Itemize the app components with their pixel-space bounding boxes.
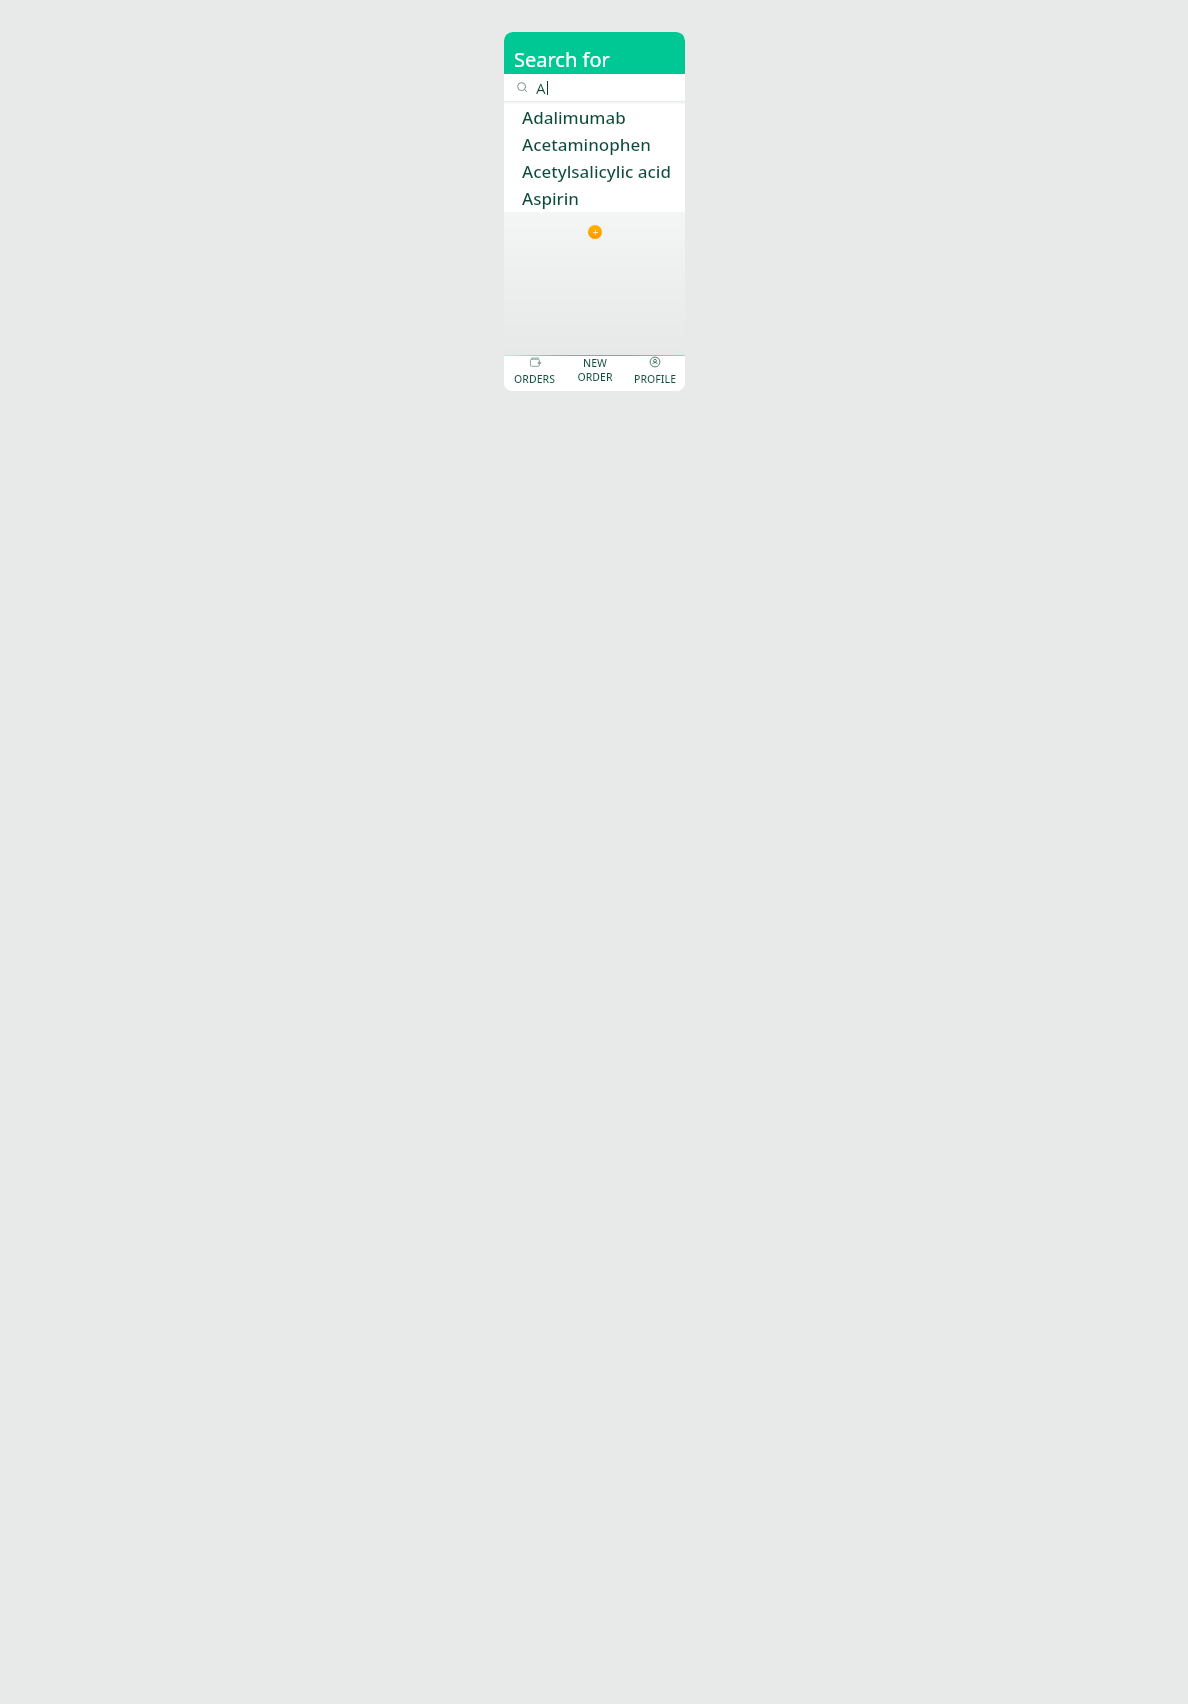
staticText: NEW ORDER [565,356,625,384]
staticText: Acetylsalicylic acid [522,160,671,183]
button[interactable]: New order [588,225,602,239]
button[interactable]: Acetaminophen [504,131,685,158]
button[interactable]: A [504,74,685,101]
staticText: Acetaminophen [522,133,651,156]
button[interactable]: NEW ORDER [565,356,625,391]
button[interactable]: Aspirin [504,185,685,212]
button[interactable]: PROFILE [625,356,685,391]
staticText: A [536,78,546,98]
button[interactable]: Acetylsalicylic acid [504,158,685,185]
staticText: Aspirin [522,187,579,210]
staticText: Adalimumab [522,106,626,129]
staticText: ORDERS [514,372,555,386]
staticText: PROFILE [634,372,676,386]
button[interactable]: ORDERS [504,356,565,391]
staticText: Search for products [514,46,685,74]
button[interactable]: Adalimumab [504,104,685,131]
